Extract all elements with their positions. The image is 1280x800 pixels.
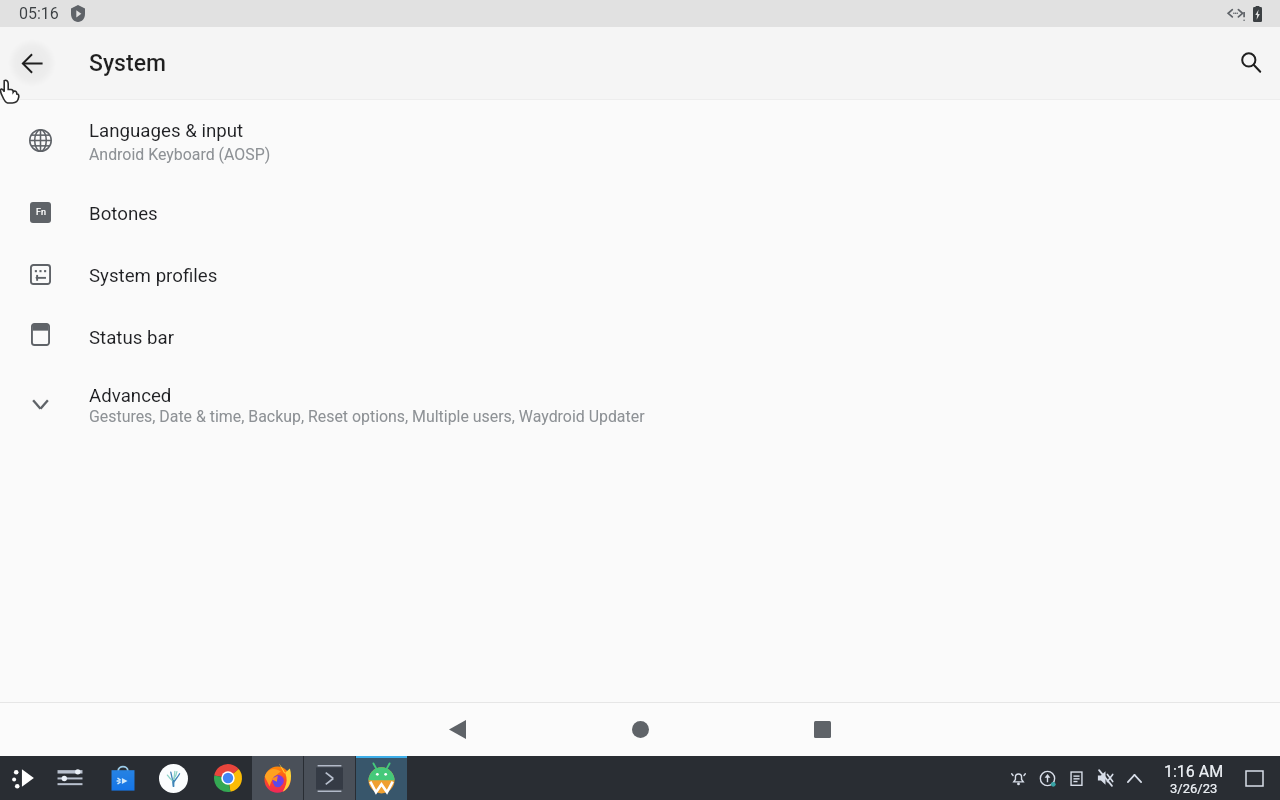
button[interactable]: Recent apps — [782, 702, 862, 756]
button[interactable]: Aurora Store — [97, 756, 148, 800]
staticText: Botones — [89, 203, 158, 225]
button[interactable]: Waydroid — [356, 756, 407, 800]
staticText: 1:16 AM — [1164, 762, 1224, 781]
button[interactable]: Volume muted — [1091, 756, 1120, 800]
button[interactable]: Advanced — [0, 367, 1280, 445]
button[interactable]: Status bar — [0, 305, 1280, 367]
staticText: Advanced — [89, 385, 172, 407]
button[interactable]: Languages & input — [0, 100, 1280, 181]
staticText: System — [89, 50, 166, 77]
staticText: 3/26/23 — [1170, 781, 1218, 796]
button[interactable]: Application launcher — [2, 756, 46, 800]
button[interactable]: Show desktop — [1239, 756, 1269, 800]
staticText: Android Keyboard (AOSP) — [89, 145, 271, 164]
button[interactable]: Firefox — [252, 756, 303, 800]
button[interactable]: Chrome — [202, 756, 253, 800]
button[interactable]: Notifications — [1004, 756, 1033, 800]
button[interactable]: Terminal — [304, 756, 355, 800]
button[interactable]: Search settings — [1227, 39, 1275, 87]
button[interactable]: Navigate up — [8, 39, 56, 87]
button[interactable]: System profiles — [0, 243, 1280, 305]
button[interactable]: App — [148, 756, 199, 800]
button[interactable]: Back — [417, 702, 497, 756]
staticText: 05:16 — [19, 4, 59, 23]
button[interactable]: Show hidden icons — [1120, 756, 1149, 800]
staticText: Status bar — [89, 327, 175, 349]
staticText: Gestures, Date & time, Backup, Reset opt… — [89, 407, 645, 426]
button[interactable]: System settings — [46, 756, 94, 800]
staticText: Languages & input — [89, 120, 244, 142]
staticText: System profiles — [89, 265, 218, 287]
button[interactable]: 1:16 AM — [1164, 756, 1224, 800]
button[interactable]: Clipboard — [1062, 756, 1091, 800]
button[interactable]: Updates available — [1033, 756, 1062, 800]
button[interactable]: Home — [600, 702, 680, 756]
staticText: Fn — [36, 207, 46, 218]
button[interactable]: Fn — [0, 181, 1280, 243]
